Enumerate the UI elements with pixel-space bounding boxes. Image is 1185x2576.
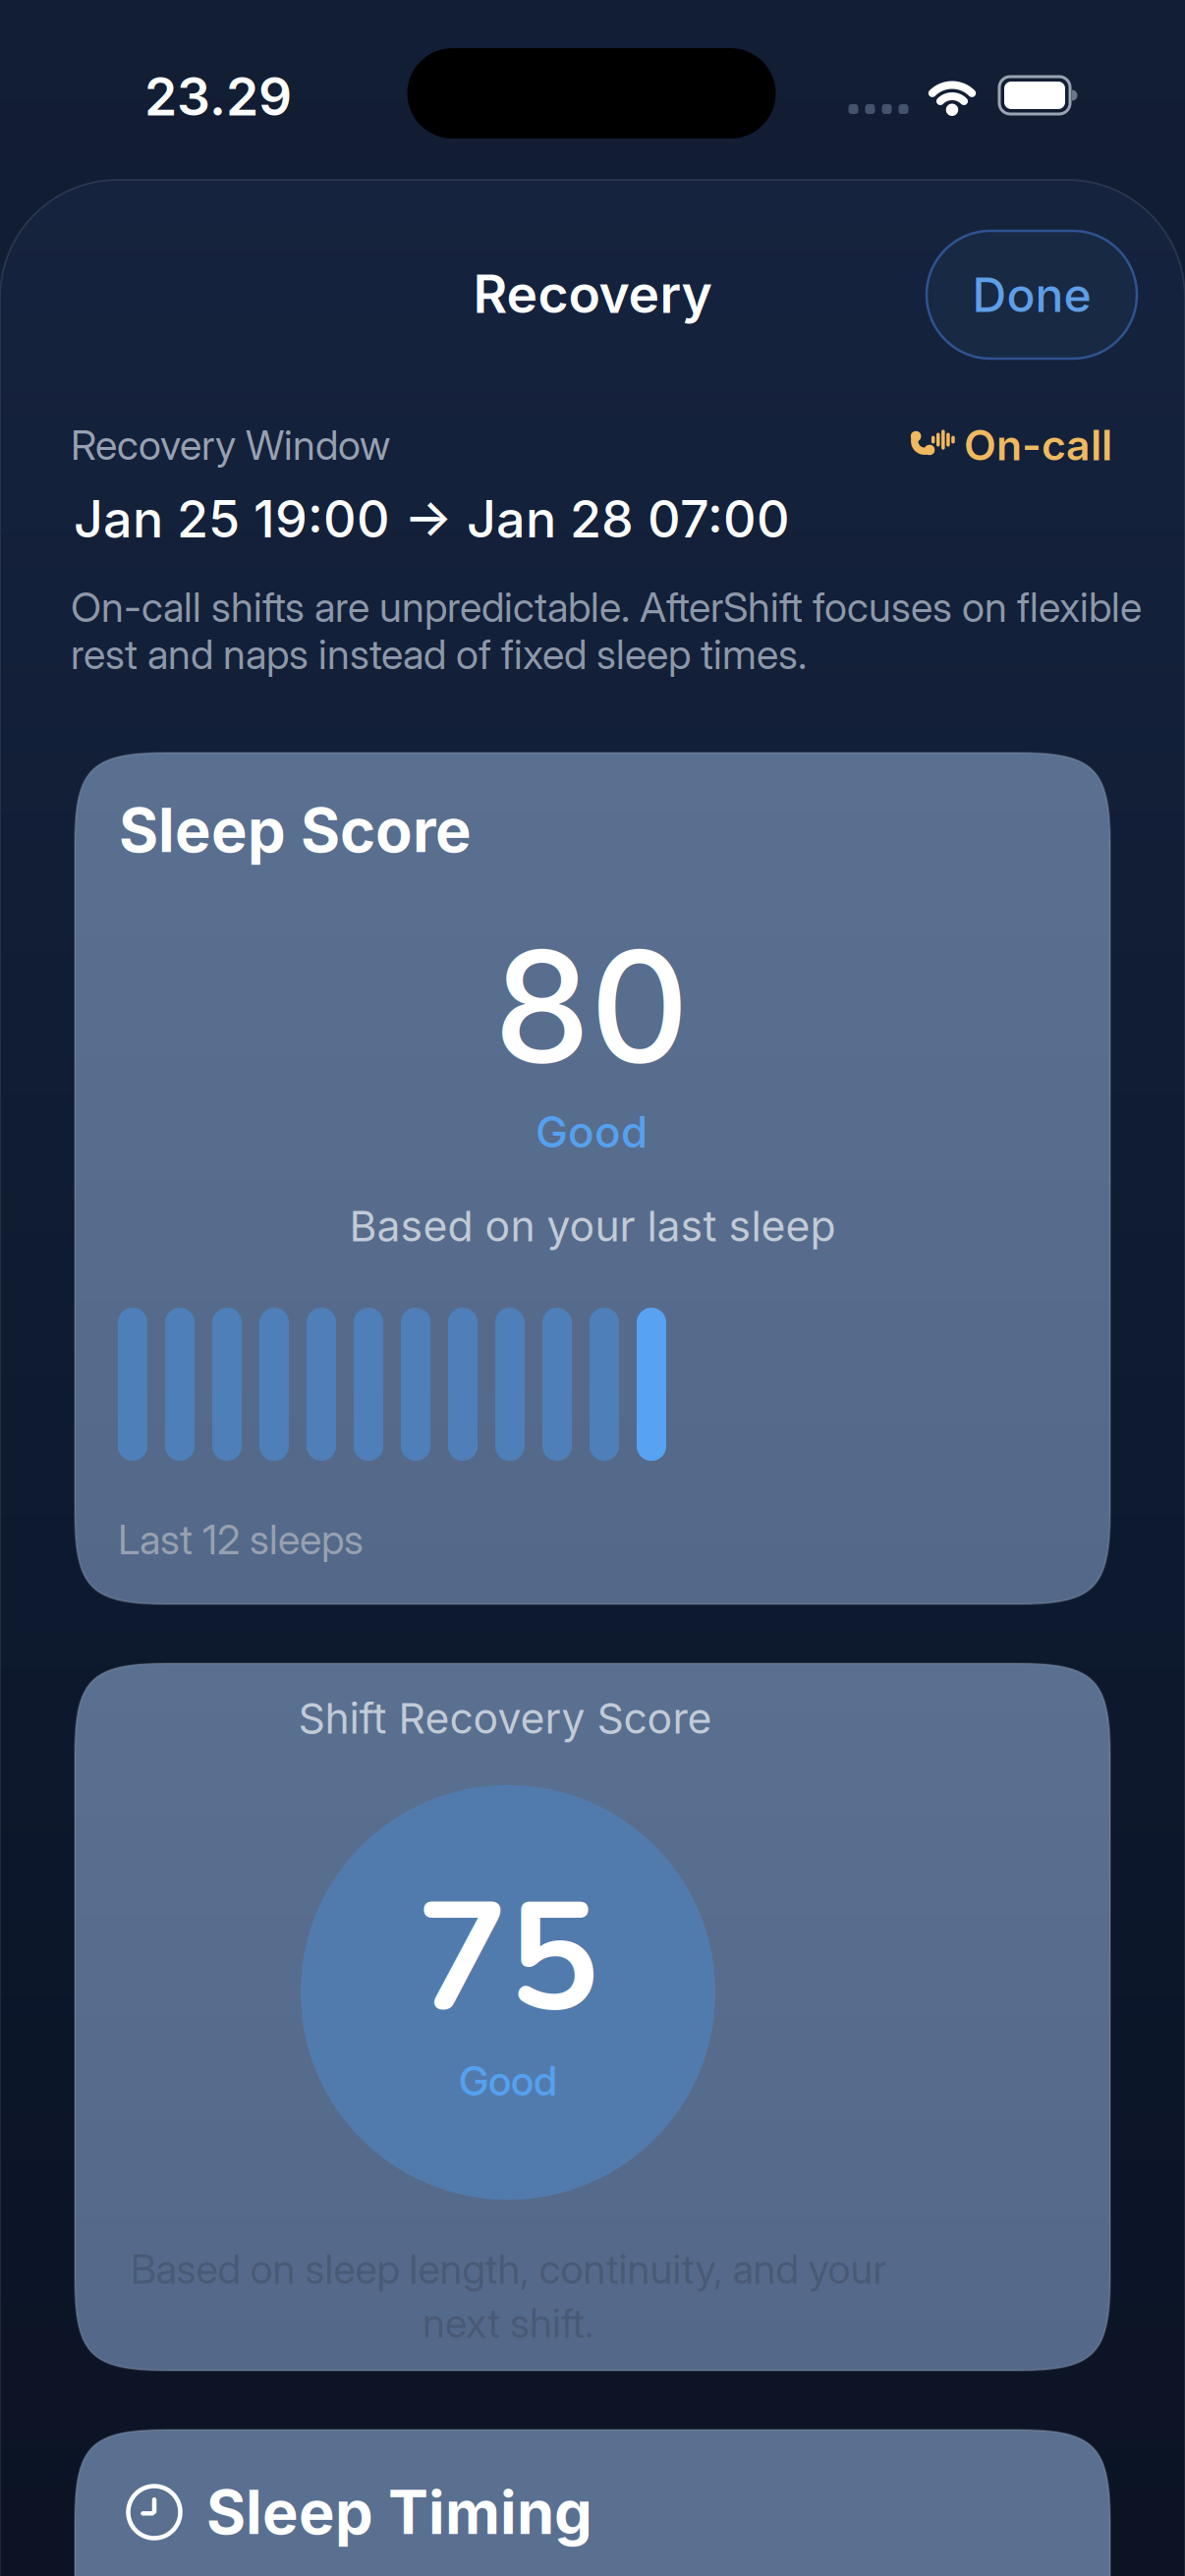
staticText: rest and naps instead of fixed sleep tim… — [71, 630, 807, 679]
staticText: Jan 25 19:00 → Jan 28 07:00 — [74, 488, 790, 550]
button[interactable]: Sleep Score — [75, 753, 1110, 1604]
staticText: On-call — [964, 420, 1112, 470]
button[interactable]: Shift Recovery Score — [75, 1663, 1110, 2371]
staticText: next shift. — [423, 2298, 593, 2348]
staticText: Recovery — [473, 262, 712, 325]
staticText: 23.29 — [144, 65, 292, 128]
staticText: Sleep Timing — [206, 2476, 592, 2549]
staticText: Good — [459, 2056, 557, 2105]
button[interactable]: Done — [927, 231, 1137, 359]
staticText: Last 12 sleeps — [118, 1515, 364, 1564]
staticText: 75 — [417, 1854, 599, 2062]
staticText: Done — [972, 266, 1091, 323]
staticText: On-call shifts are unpredictable. AfterS… — [71, 583, 1142, 632]
staticText: Shift Recovery Score — [298, 1693, 712, 1744]
staticText: Recovery Window — [71, 420, 390, 470]
staticText: Good — [536, 1106, 648, 1158]
staticText: Sleep Score — [119, 794, 472, 867]
button[interactable]: Sleep Timing — [75, 2430, 1110, 2576]
staticText: 80 — [494, 913, 689, 1099]
staticText: Based on sleep length, continuity, and y… — [130, 2244, 886, 2294]
staticText: Based on your last sleep — [349, 1201, 836, 1251]
